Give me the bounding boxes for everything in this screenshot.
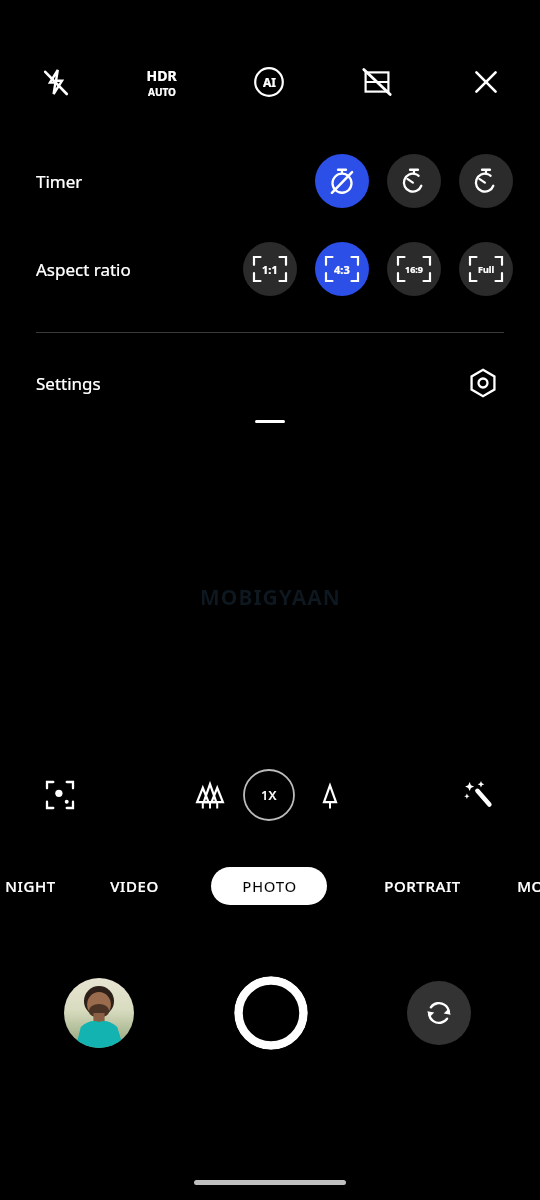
- button[interactable]: Ultra wide: [183, 768, 237, 822]
- staticText: 1X: [261, 786, 277, 804]
- staticText: MOBIGYAAN: [200, 583, 341, 612]
- button[interactable]: HDR auto: [121, 52, 201, 112]
- button[interactable]: Flash off: [29, 52, 83, 112]
- staticText: 16:9: [405, 263, 423, 275]
- button[interactable]: PORTRAIT: [364, 862, 480, 910]
- button[interactable]: Full: [459, 242, 513, 296]
- button[interactable]: 1:1: [243, 242, 297, 296]
- button[interactable]: AI scene detection: [239, 52, 299, 112]
- button[interactable]: 1X: [241, 768, 297, 822]
- button[interactable]: NIGHT: [0, 862, 78, 910]
- staticText: 1:1: [262, 262, 278, 277]
- button[interactable]: Filters: [451, 768, 505, 822]
- staticText: PHOTO: [242, 876, 297, 896]
- button[interactable]: Timer 3 seconds: [387, 154, 441, 208]
- button[interactable]: Timer off: [315, 154, 369, 208]
- staticText: MO: [517, 876, 540, 896]
- button[interactable]: MO: [482, 862, 540, 910]
- button[interactable]: Switch camera: [407, 981, 471, 1045]
- button[interactable]: Shutter: [234, 976, 308, 1050]
- button[interactable]: Close: [459, 52, 513, 112]
- staticText: Settings: [36, 372, 101, 395]
- button[interactable]: 64 megapixel off: [350, 52, 404, 112]
- button[interactable]: VIDEO: [86, 862, 182, 910]
- staticText: AI: [263, 74, 276, 90]
- button[interactable]: 4:3: [315, 242, 369, 296]
- staticText: PORTRAIT: [384, 876, 461, 896]
- staticText: AUTO: [148, 85, 176, 99]
- button[interactable]: Lens scan: [33, 768, 87, 822]
- button[interactable]: 16:9: [387, 242, 441, 296]
- staticText: 4:3: [334, 262, 350, 277]
- button[interactable]: Telephoto: [303, 768, 357, 822]
- staticText: HDR: [146, 66, 177, 85]
- button[interactable]: Timer 10 seconds: [459, 154, 513, 208]
- staticText: Aspect ratio: [36, 258, 131, 281]
- staticText: Timer: [36, 170, 83, 193]
- button[interactable]: Gallery: [64, 978, 134, 1048]
- staticText: VIDEO: [110, 876, 159, 896]
- staticText: NIGHT: [5, 876, 56, 896]
- button[interactable]: PHOTO: [211, 862, 327, 910]
- button[interactable]: Settings: [0, 356, 540, 410]
- staticText: Full: [478, 263, 495, 275]
